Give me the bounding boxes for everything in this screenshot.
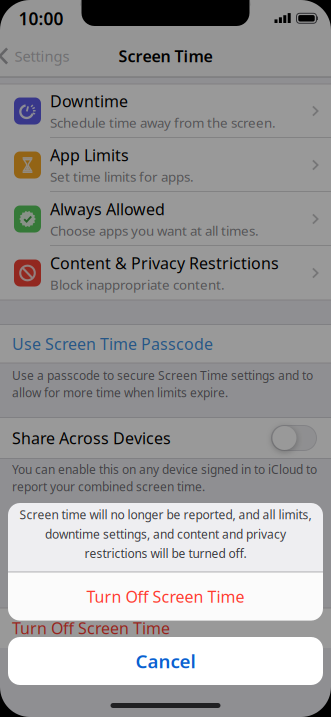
staticText: allow for more time when limits expire.	[12, 385, 228, 401]
staticText: Downtime	[50, 90, 128, 112]
staticText: App Limits	[50, 144, 129, 166]
staticText: Content & Privacy Restrictions	[50, 252, 279, 274]
staticText: Turn Off Screen Time	[12, 617, 170, 639]
staticText: Use a passcode to secure Screen Time set…	[12, 367, 313, 383]
staticText: Choose apps you want at all times.	[50, 222, 259, 239]
staticText: Share Across Devices	[12, 427, 171, 449]
button[interactable]: Back to Settings	[0, 46, 69, 66]
staticText: Turn Off Screen Time	[86, 586, 244, 607]
button[interactable]: Share Across Devices	[0, 417, 331, 458]
button[interactable]: Always Allowed	[0, 192, 331, 246]
staticText: Schedule time away from the screen.	[50, 114, 276, 131]
button[interactable]: Downtime	[0, 84, 331, 138]
staticText: Block inappropriate content.	[50, 276, 225, 293]
staticText: Use Screen Time Passcode	[12, 333, 213, 354]
staticText: Always Allowed	[50, 198, 165, 220]
staticText: Cancel	[135, 649, 195, 673]
button[interactable]: Content & Privacy Restrictions	[0, 246, 331, 300]
button[interactable]: Turn Off Screen Time	[0, 608, 331, 648]
staticText: 10:00	[18, 7, 63, 30]
staticText: Settings	[14, 46, 69, 66]
staticText: restrictions will be turned off.	[84, 545, 246, 561]
staticText: You can enable this on any device signed…	[12, 461, 317, 477]
staticText: Screen Time	[118, 45, 212, 67]
staticText: Set time limits for apps.	[50, 168, 194, 185]
staticText: downtime settings, and content and priva…	[45, 526, 286, 542]
button[interactable]: Use Screen Time Passcode	[0, 324, 331, 363]
button[interactable]: Turn Off Screen Time	[8, 572, 323, 621]
staticText: report your combined screen time.	[12, 479, 205, 495]
button[interactable]: App Limits	[0, 138, 331, 192]
staticText: Screen time will no longer be reported, …	[19, 507, 311, 523]
button[interactable]: Cancel	[8, 637, 323, 685]
